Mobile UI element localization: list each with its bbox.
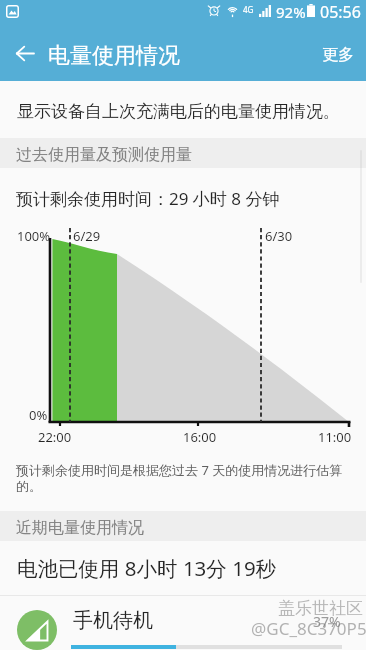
staticText: 05:56	[320, 1, 361, 23]
staticText: 电量使用情况	[48, 42, 180, 70]
staticText: 22:00	[38, 428, 72, 446]
staticText: 4G	[243, 4, 254, 15]
staticText: 6/30	[265, 227, 293, 245]
staticText: 0%	[29, 406, 48, 424]
staticText: 电池已使用 8小时 13分 19秒	[17, 554, 277, 582]
staticText: 过去使用量及预测使用量	[16, 145, 192, 165]
staticText: 37%	[313, 612, 341, 631]
staticText: 显示设备自上次充满电后的电量使用情况。	[17, 101, 340, 122]
staticText: 盖乐世社区	[278, 598, 363, 619]
staticText: 92%	[276, 2, 306, 22]
staticText: 手机待机	[73, 608, 153, 633]
button[interactable]: 更多	[312, 33, 364, 77]
staticText: 16:00	[183, 428, 217, 446]
staticText: 6/29	[73, 227, 101, 245]
button[interactable]: Back	[0, 27, 50, 79]
staticText: 预计剩余使用时间是根据您过去 7 天的使用情况进行估算的。	[16, 461, 346, 495]
button[interactable]: 手机待机	[0, 596, 366, 650]
staticText: @GC_8C370P5	[251, 617, 366, 640]
staticText: 预计剩余使用时间：29 小时 8 分钟	[16, 187, 280, 210]
staticText: 更多	[322, 45, 354, 65]
staticText: 近期电量使用情况	[16, 518, 144, 538]
staticText: 11:00	[318, 428, 352, 446]
staticText: 100%	[17, 227, 51, 245]
